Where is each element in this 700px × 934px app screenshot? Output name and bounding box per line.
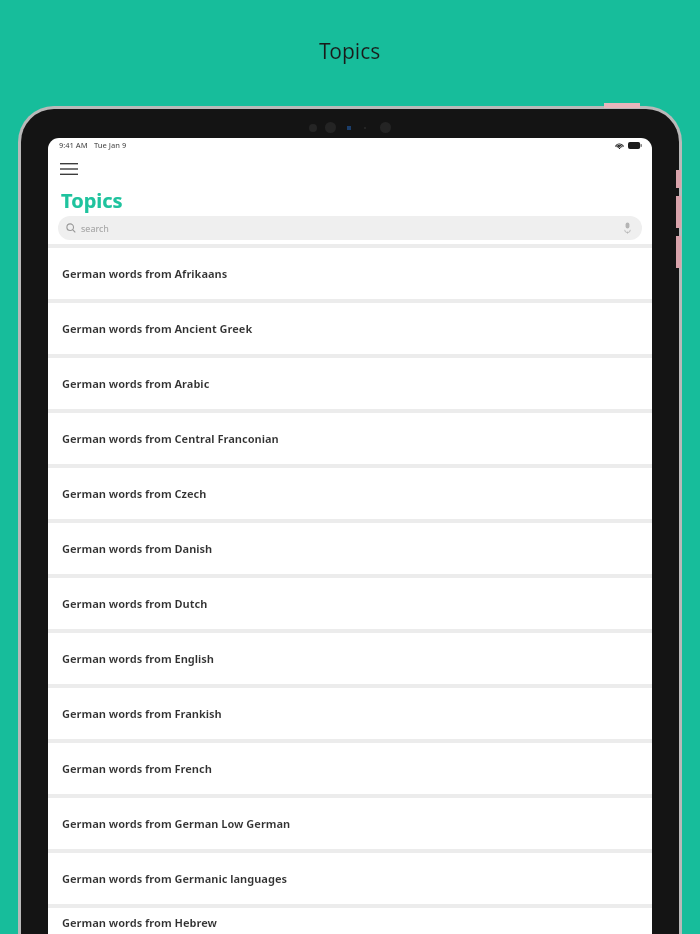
button[interactable]: Open navigation menu: [54, 154, 84, 184]
staticText: German words from German Low German: [62, 816, 291, 831]
button[interactable]: German words from Arabic: [48, 358, 652, 409]
button[interactable]: German words from Dutch: [48, 578, 652, 629]
staticText: German words from Arabic: [62, 376, 210, 391]
staticText: German words from Dutch: [62, 596, 208, 611]
button[interactable]: German words from Hebrew: [48, 908, 652, 934]
button[interactable]: German words from Afrikaans: [48, 248, 652, 299]
staticText: German words from Germanic languages: [62, 871, 287, 886]
button[interactable]: German words from German Low German: [48, 798, 652, 849]
button[interactable]: Voice search: [620, 221, 634, 235]
staticText: German words from French: [62, 761, 212, 776]
button[interactable]: German words from Frankish: [48, 688, 652, 739]
staticText: German words from Danish: [62, 541, 213, 556]
button[interactable]: German words from Ancient Greek: [48, 303, 652, 354]
staticText: Topics: [61, 187, 123, 214]
staticText: German words from Frankish: [62, 706, 222, 721]
button[interactable]: German words from Germanic languages: [48, 853, 652, 904]
staticText: German words from Hebrew: [62, 915, 217, 930]
staticText: Tue Jan 9: [94, 140, 127, 150]
staticText: German words from Afrikaans: [62, 266, 228, 281]
staticText: German words from Czech: [62, 486, 207, 501]
button[interactable]: German words from Central Franconian: [48, 413, 652, 464]
button[interactable]: German words from French: [48, 743, 652, 794]
button[interactable]: German words from Czech: [48, 468, 652, 519]
staticText: German words from Ancient Greek: [62, 321, 253, 336]
staticText: German words from English: [62, 651, 215, 666]
button[interactable]: German words from Danish: [48, 523, 652, 574]
button[interactable]: search: [58, 216, 642, 240]
staticText: Topics: [319, 37, 381, 66]
button[interactable]: German words from English: [48, 633, 652, 684]
staticText: German words from Central Franconian: [62, 431, 279, 446]
staticText: 9:41 AM: [59, 140, 88, 150]
staticText: search: [81, 222, 109, 234]
